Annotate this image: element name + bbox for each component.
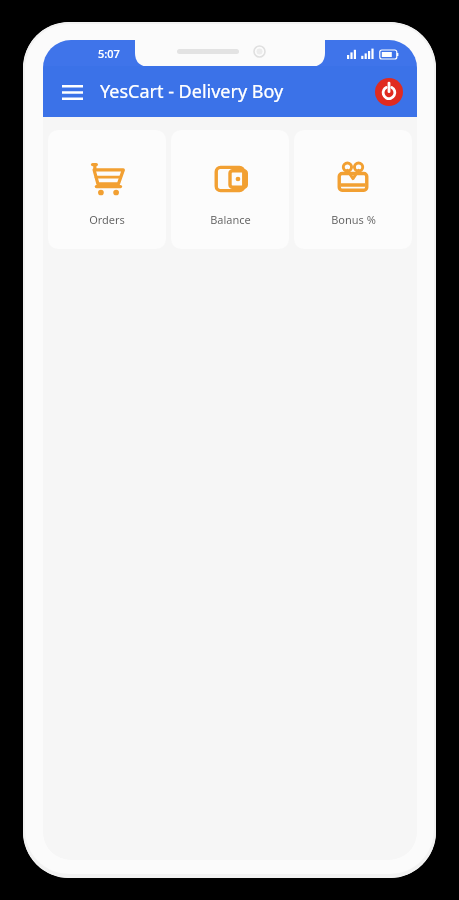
button[interactable]: Bonus % — [294, 130, 412, 249]
staticText: YesCart - Delivery Boy — [100, 79, 284, 104]
staticText: Orders — [89, 212, 125, 227]
staticText: Balance — [210, 212, 251, 227]
button[interactable]: Log out — [373, 76, 405, 108]
button[interactable]: Balance — [171, 130, 289, 249]
staticText: Bonus % — [331, 212, 376, 227]
staticText: 5:07 — [98, 46, 120, 61]
button[interactable]: Open navigation menu — [57, 77, 87, 107]
button[interactable]: Orders — [48, 130, 166, 249]
